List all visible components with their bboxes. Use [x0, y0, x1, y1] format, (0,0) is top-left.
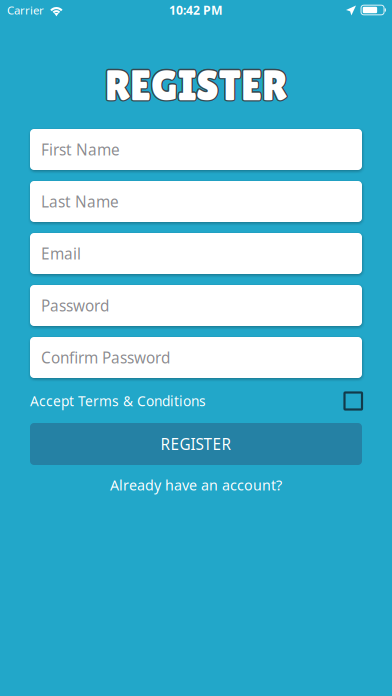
staticText: First Name [41, 139, 120, 160]
staticText: REGISTER [106, 61, 288, 110]
staticText: Already have an account? [110, 475, 282, 495]
staticText: REGISTER [160, 434, 231, 454]
staticText: REGISTER [105, 59, 287, 108]
button[interactable]: REGISTER [0, 423, 392, 465]
staticText: Accept Terms & Conditions [30, 392, 206, 410]
staticText: 10:42 PM [169, 2, 223, 18]
staticText: REGISTER [105, 62, 287, 111]
staticText: Confirm Password [41, 347, 170, 368]
staticText: REGISTER [106, 60, 288, 110]
button[interactable]: Email [30, 233, 362, 274]
button[interactable]: Already have an account? [0, 475, 392, 495]
staticText: Last Name [41, 191, 119, 212]
staticText: REGISTER [105, 60, 287, 110]
staticText: REGISTER [106, 59, 288, 109]
staticText: Email [41, 243, 81, 264]
staticText: REGISTER [104, 59, 286, 109]
staticText: REGISTER [104, 61, 286, 110]
staticText: Password [41, 295, 109, 316]
button[interactable]: Last Name [30, 181, 362, 222]
button[interactable]: Accept Terms & Conditions [0, 389, 392, 413]
button[interactable]: First Name [30, 129, 362, 170]
staticText: Carrier [7, 2, 44, 18]
button[interactable]: Confirm Password [30, 337, 362, 378]
button[interactable]: Password [30, 285, 362, 326]
staticText: REGISTER [104, 60, 286, 110]
